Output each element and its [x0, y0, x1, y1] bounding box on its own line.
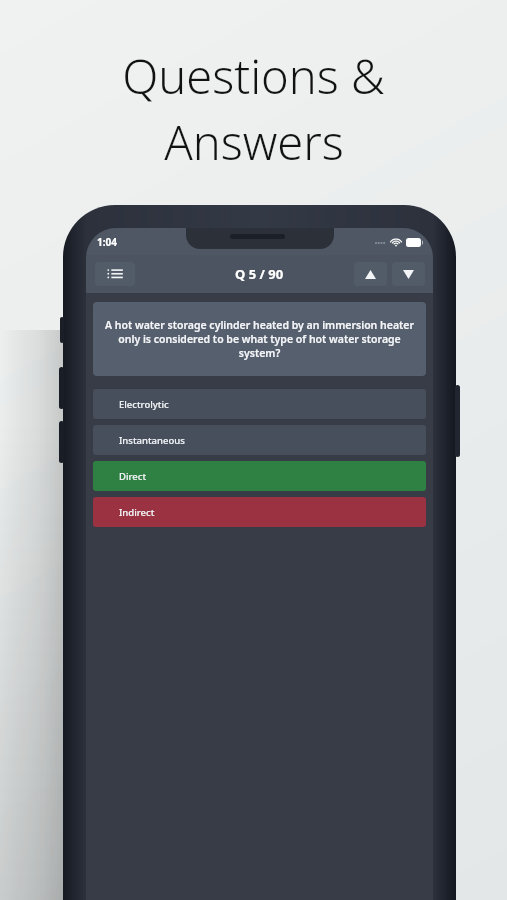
staticText: Questions & — [122, 44, 385, 108]
staticText: A hot water storage cylinder heated by a… — [99, 318, 420, 360]
button[interactable]: Direct — [93, 461, 426, 491]
staticText: Instantaneous — [119, 434, 185, 447]
staticText: Answers — [164, 110, 344, 174]
staticText: Direct — [119, 470, 147, 483]
button[interactable]: Electrolytic — [93, 389, 426, 419]
button[interactable]: Indirect — [93, 497, 426, 527]
staticText: 1:04 — [97, 235, 117, 249]
button[interactable]: Instantaneous — [93, 425, 426, 455]
button[interactable]: Question list — [95, 262, 135, 286]
button[interactable]: Previous question — [354, 262, 387, 286]
staticText: Indirect — [119, 506, 155, 519]
staticText: Q 5 / 90 — [235, 265, 284, 283]
staticText: Electrolytic — [119, 398, 169, 411]
button[interactable]: Next question — [392, 262, 425, 286]
